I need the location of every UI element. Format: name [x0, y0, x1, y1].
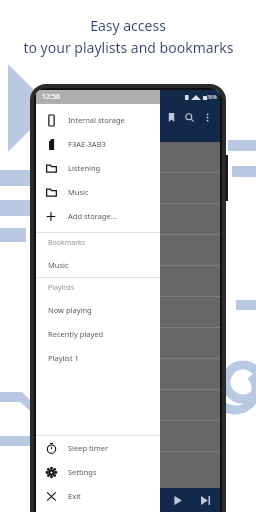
button[interactable]: Playlist 1	[36, 346, 160, 370]
button[interactable]: Add bookmark	[162, 108, 180, 126]
button[interactable]: Music	[36, 180, 160, 204]
button[interactable]: Search	[180, 108, 198, 126]
button[interactable]: Music	[36, 253, 160, 277]
button[interactable]	[36, 390, 220, 421]
button[interactable]: Now playing	[36, 298, 160, 322]
button[interactable]	[36, 266, 220, 297]
button[interactable]: Listening	[36, 156, 160, 180]
button[interactable]: Sleep timer	[36, 436, 160, 460]
staticText: F3AE-3AB3	[68, 139, 106, 149]
staticText: Playlist 1	[48, 353, 79, 363]
staticText: 12:56	[42, 92, 60, 102]
button[interactable]	[36, 421, 220, 452]
staticText: Exit	[68, 491, 81, 501]
button[interactable]	[36, 359, 220, 390]
button[interactable]: Recently played	[36, 322, 160, 346]
staticText: Listening	[68, 163, 101, 173]
button[interactable]: F3AE-3AB3	[36, 132, 160, 156]
staticText: Sleep timer	[68, 443, 109, 453]
staticText: Recently played	[48, 329, 104, 339]
staticText: Internal storage	[68, 115, 125, 125]
staticText: 36%	[207, 94, 217, 101]
staticText: Playlists	[48, 283, 75, 293]
staticText: Now playing	[48, 305, 92, 315]
button[interactable]	[36, 204, 220, 235]
button[interactable]: More options	[198, 108, 216, 126]
button[interactable]: Internal storage	[36, 108, 160, 132]
staticText: Add storage...	[68, 211, 117, 221]
button[interactable]	[36, 328, 220, 359]
button[interactable]	[36, 297, 220, 328]
button[interactable]: Next	[196, 491, 214, 509]
staticText: Bookmarks	[48, 238, 86, 248]
button[interactable]: Add storage...	[36, 204, 160, 228]
staticText: Settings	[68, 467, 97, 477]
staticText: Easy access	[90, 16, 166, 35]
button[interactable]: Exit	[36, 484, 160, 508]
staticText: to your playlists and bookmarks	[23, 38, 234, 57]
button[interactable]: Play	[168, 491, 186, 509]
button[interactable]	[36, 235, 220, 266]
button[interactable]	[36, 173, 220, 204]
button[interactable]: Settings	[36, 460, 160, 484]
staticText: Music	[68, 187, 89, 197]
staticText: Music	[48, 260, 69, 270]
button[interactable]	[36, 142, 220, 173]
